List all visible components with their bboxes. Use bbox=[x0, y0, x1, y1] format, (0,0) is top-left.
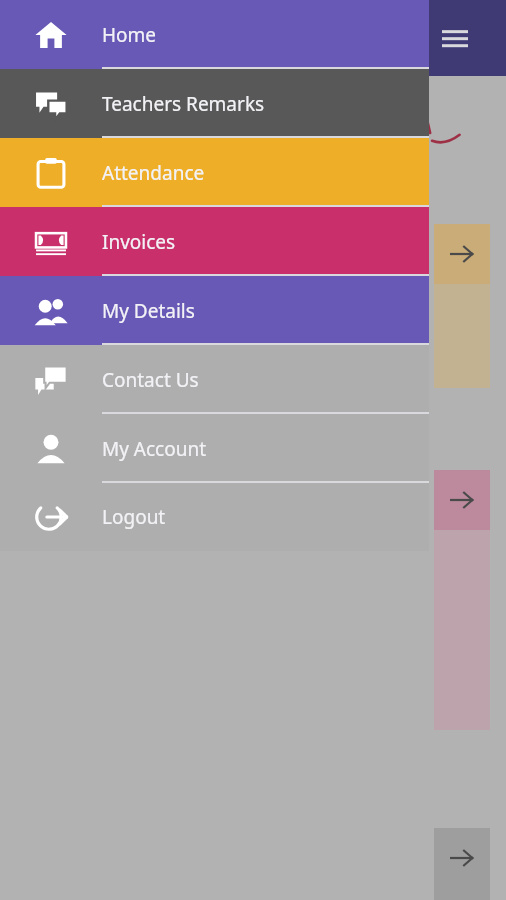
staticText: Attendance bbox=[102, 160, 205, 186]
button[interactable]: Invoices bbox=[0, 207, 429, 276]
button[interactable] bbox=[434, 470, 490, 730]
button[interactable]: Teachers Remarks bbox=[0, 69, 429, 138]
button[interactable]: Logout bbox=[0, 483, 429, 551]
button[interactable]: Attendance bbox=[0, 138, 429, 207]
staticText: Invoices bbox=[102, 229, 176, 255]
button[interactable]: Open navigation menu bbox=[440, 24, 470, 54]
staticText: Home bbox=[102, 22, 157, 48]
button[interactable] bbox=[434, 828, 490, 900]
staticText: Contact Us bbox=[102, 367, 199, 393]
staticText: Logout bbox=[102, 504, 166, 530]
button[interactable]: My Details bbox=[0, 276, 429, 345]
staticText: My Account bbox=[102, 436, 207, 462]
button[interactable]: My Account bbox=[0, 414, 429, 483]
button[interactable] bbox=[434, 224, 490, 388]
staticText: My Details bbox=[102, 298, 195, 324]
button[interactable]: Contact Us bbox=[0, 345, 429, 414]
button[interactable]: Home bbox=[0, 0, 429, 69]
staticText: Teachers Remarks bbox=[102, 91, 265, 117]
